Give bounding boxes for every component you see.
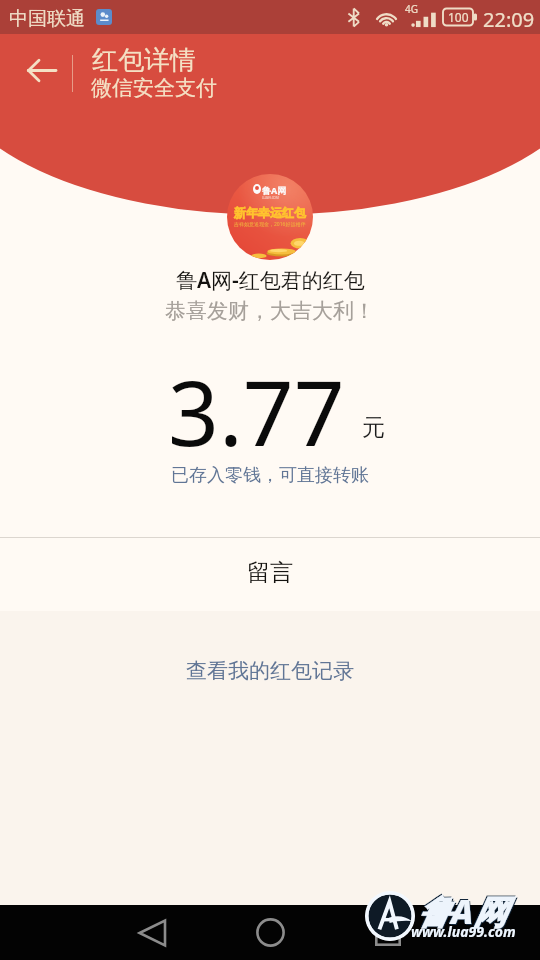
staticText: 查看我的红包记录 xyxy=(186,658,354,684)
staticText: 鲁A网 xyxy=(418,889,507,934)
button[interactable]: Back xyxy=(122,905,182,960)
staticText: 恭喜发财，大吉大利！ xyxy=(165,298,375,324)
staticText: 元 xyxy=(362,413,385,442)
staticText: 3.77 xyxy=(168,351,345,472)
staticText: 鲁A网 xyxy=(417,888,506,933)
staticText: 红包详情 xyxy=(92,44,196,77)
staticText: 鲁A网 xyxy=(419,890,508,935)
button[interactable]: 留言 xyxy=(0,535,540,609)
staticText: 鲁A网-红包君的红包 xyxy=(176,266,365,295)
staticText: 鲁A网 xyxy=(262,184,287,196)
button[interactable]: Recents xyxy=(358,905,418,960)
button[interactable]: 查看我的红包记录 xyxy=(0,635,540,707)
button[interactable]: Sender avatar xyxy=(227,174,313,260)
staticText: 留言 xyxy=(247,558,293,587)
button[interactable]: Home xyxy=(240,905,300,960)
staticText: 4G xyxy=(405,2,418,16)
staticText: 22:09 xyxy=(483,6,535,33)
staticText: 已存入零钱，可直接转账 xyxy=(171,464,369,487)
staticText: 新年幸运红包 xyxy=(234,205,306,220)
staticText: www.lua99.com xyxy=(411,922,516,941)
staticText: 中国联通 xyxy=(9,7,85,31)
staticText: LUA99.COM xyxy=(262,196,279,200)
button[interactable]: Back xyxy=(15,44,69,96)
staticText: 100 xyxy=(448,9,469,25)
staticText: 吉祥如意送现金，2016好运相伴 xyxy=(234,221,306,228)
staticText: 微信安全支付 xyxy=(91,75,217,101)
